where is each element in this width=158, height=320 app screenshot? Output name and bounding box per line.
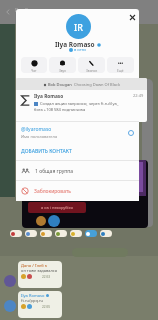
button[interactable]: 1 общая группа — [16, 163, 139, 180]
staticText: я ок і нехорубіся — [41, 205, 73, 210]
button[interactable]: Back — [2, 6, 14, 18]
staticText: ft.ru/ppq.ru — [21, 298, 44, 303]
staticText: @ilyaromaso — [21, 126, 52, 133]
staticText: Заблокировать — [34, 188, 71, 195]
staticText: Ilya Romaso — [34, 93, 64, 100]
staticText: Bob Dougan — [48, 82, 72, 87]
staticText: 22:49 — [133, 93, 144, 98]
staticText: 22:53 — [42, 275, 51, 279]
staticText: Даня / Глеб к — [21, 263, 48, 268]
staticText: в сети — [74, 47, 86, 52]
button[interactable]: Звонок — [78, 57, 105, 73]
staticText: Ilya Romaso — [21, 293, 45, 298]
staticText: Имя пользователя — [21, 134, 58, 139]
staticText: Звонок — [86, 69, 98, 73]
staticText: Звук — [59, 69, 66, 73]
staticText: Чат — [31, 69, 37, 73]
button[interactable]: Close — [125, 10, 139, 24]
staticText: Ilya Romaso — [55, 40, 95, 49]
staticText: 22:55 — [42, 305, 51, 309]
staticText: он тоже задавался — [21, 268, 58, 273]
button[interactable]: Ilya Romaso — [16, 93, 147, 112]
button[interactable]: @ilyaromaso — [16, 124, 139, 141]
button[interactable]: Ещё — [107, 57, 134, 73]
button[interactable]: Заблокировать — [16, 183, 139, 199]
staticText: Ещё — [117, 69, 124, 73]
staticText: Создал акции запросом, через ft.ru/ilya_ — [40, 101, 119, 106]
staticText: Choosing Dawn Of Black — [74, 82, 121, 87]
button[interactable]: Чат — [21, 57, 47, 73]
staticText: IR — [74, 21, 83, 33]
staticText: бота +108 584 подписчика — [34, 107, 86, 112]
staticText: 1 общая группа — [35, 168, 74, 175]
button[interactable]: Звук — [49, 57, 76, 73]
button[interactable]: ДОБАВИТЬ КОНТАКТ — [16, 145, 139, 158]
staticText: Ilya Romaso — [15, 7, 45, 14]
